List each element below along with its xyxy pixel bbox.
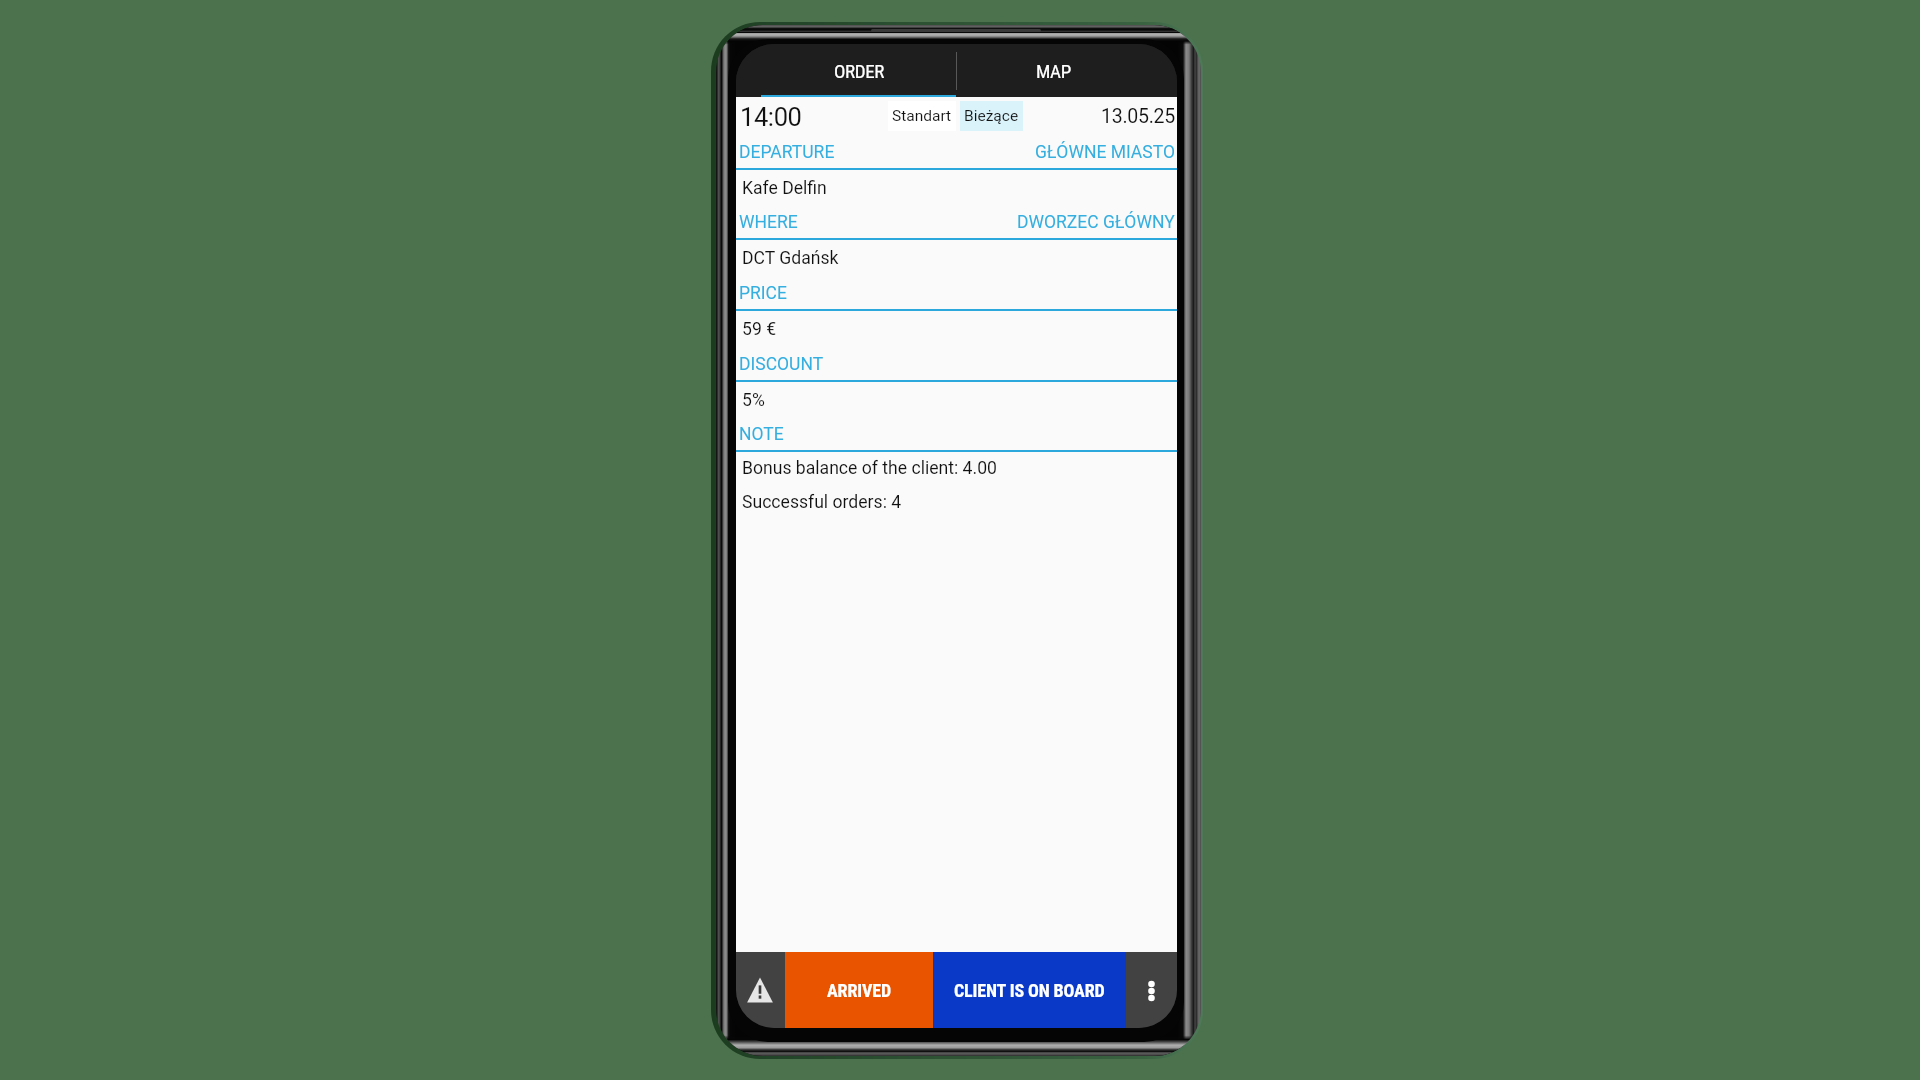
staticText: ORDER xyxy=(834,60,884,82)
button[interactable]: Bieżące xyxy=(960,101,1023,131)
staticText: Bieżące xyxy=(964,107,1019,125)
staticText: 59 € xyxy=(742,319,777,340)
button[interactable]: PRICE xyxy=(736,275,1177,311)
staticText: Successful orders: 4 xyxy=(742,492,902,513)
button[interactable]: Kafe Delfin xyxy=(742,170,1177,206)
button[interactable]: WHERE xyxy=(736,204,1177,240)
button[interactable]: CLIENT IS ON BOARD xyxy=(933,952,1126,1028)
staticText: 14:00 xyxy=(740,102,802,132)
button[interactable]: DISCOUNT xyxy=(736,346,1177,382)
staticText: 5% xyxy=(742,390,765,411)
button[interactable]: ARRIVED xyxy=(785,952,933,1028)
staticText: Kafe Delfin xyxy=(742,178,827,199)
staticText: DEPARTURE xyxy=(739,142,835,163)
button[interactable]: 5% xyxy=(742,382,1177,418)
staticText: CLIENT IS ON BOARD xyxy=(954,980,1105,1001)
staticText: Standart xyxy=(892,107,952,125)
button[interactable]: More options xyxy=(1126,952,1177,1028)
staticText: PRICE xyxy=(739,283,787,304)
button[interactable]: MAP xyxy=(956,44,1151,97)
staticText: DWORZEC GŁÓWNY xyxy=(1017,212,1175,233)
button[interactable]: Standart xyxy=(888,101,956,131)
staticText: 13.05.25 xyxy=(1101,105,1176,128)
button[interactable]: NOTE xyxy=(736,416,1177,452)
button[interactable]: Successful orders: 4 xyxy=(742,488,1177,516)
button[interactable]: DEPARTURE xyxy=(736,134,1177,170)
staticText: DCT Gdańsk xyxy=(742,248,839,269)
button[interactable]: DCT Gdańsk xyxy=(742,240,1177,276)
staticText: Bonus balance of the client: 4.00 xyxy=(742,458,997,479)
button[interactable]: Bonus balance of the client: 4.00 xyxy=(742,454,1177,482)
staticText: GŁÓWNE MIASTO xyxy=(1035,142,1175,163)
staticText: DISCOUNT xyxy=(739,354,824,375)
staticText: WHERE xyxy=(739,212,798,233)
button[interactable]: Warning xyxy=(736,952,785,1028)
staticText: ARRIVED xyxy=(827,980,891,1001)
button[interactable]: ORDER xyxy=(761,44,956,97)
staticText: NOTE xyxy=(739,424,784,445)
staticText: MAP xyxy=(1036,60,1071,82)
button[interactable]: 59 € xyxy=(742,311,1177,347)
